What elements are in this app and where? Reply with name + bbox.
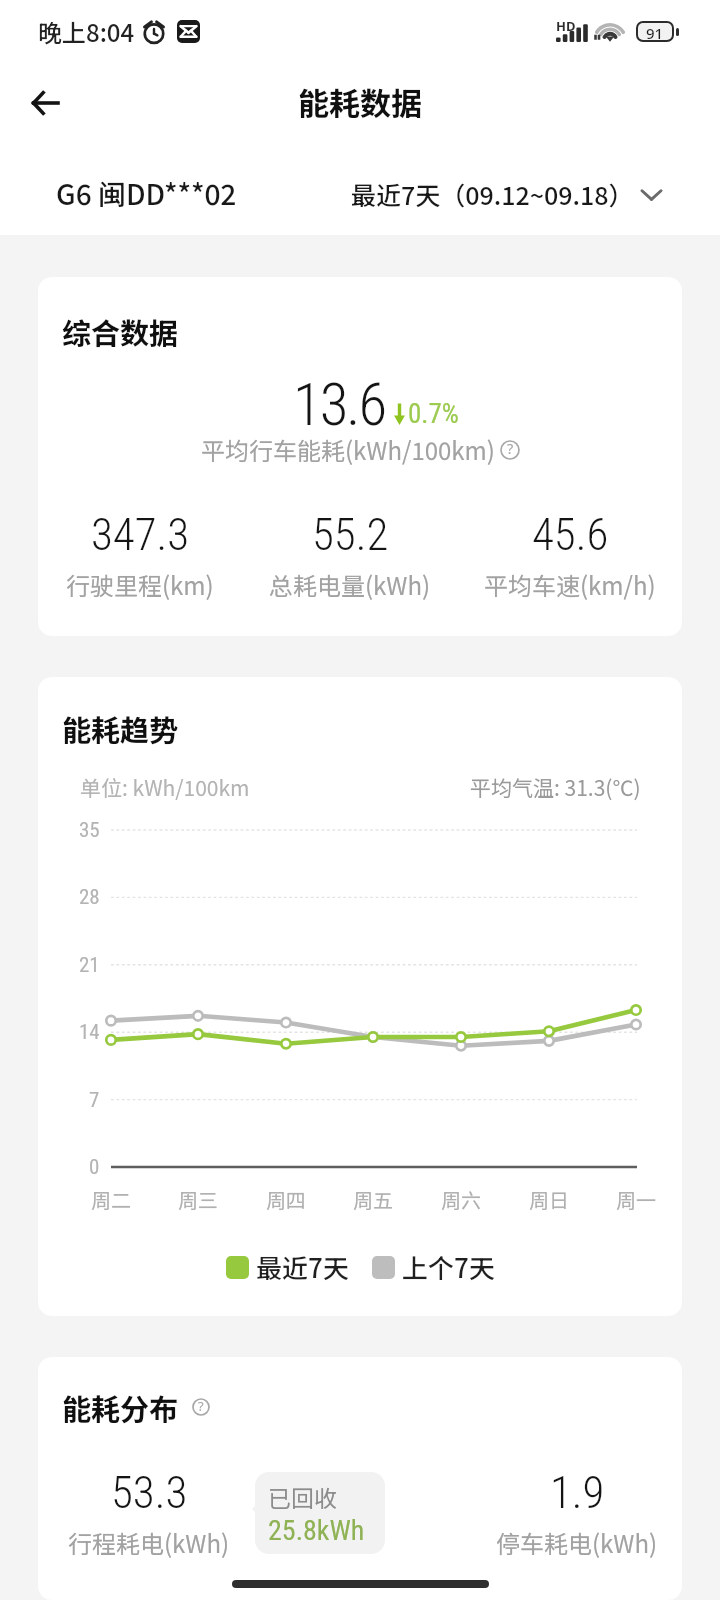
staticText: 周四 (266, 1185, 306, 1214)
staticText: 53.3 (111, 1466, 188, 1519)
button[interactable]: 最近7天（09.12~09.18） (351, 176, 663, 212)
staticText: 行驶里程(km) (66, 567, 214, 602)
staticText: 单位: kWh/100km (80, 772, 250, 802)
button[interactable]: Help (192, 1398, 210, 1416)
staticText: 能耗分布 (62, 1386, 179, 1428)
staticText: 0.7% (408, 398, 459, 430)
staticText: 28 (79, 885, 100, 910)
staticText: 周二 (91, 1185, 131, 1214)
staticText: 21 (79, 953, 100, 978)
staticText: 最近7天 (256, 1248, 349, 1286)
staticText: 周六 (441, 1185, 481, 1214)
staticText: 总耗电量(kWh) (269, 567, 431, 602)
button[interactable]: 综合数据 (38, 277, 682, 636)
staticText: ? (507, 439, 514, 459)
staticText: 7 (89, 1088, 100, 1113)
staticText: 行程耗电(kWh) (68, 1525, 230, 1560)
staticText: 45.6 (532, 508, 609, 561)
button[interactable]: 能耗趋势 (38, 677, 682, 1316)
staticText: 1.9 (550, 1466, 605, 1519)
staticText: 91 (646, 23, 664, 40)
button[interactable]: 能耗分布 (38, 1357, 682, 1600)
staticText: 周日 (529, 1185, 569, 1214)
staticText: 平均气温: 31.3(℃) (470, 772, 641, 802)
staticText: 周一 (616, 1185, 656, 1214)
staticText: 最近7天（09.12~09.18） (351, 176, 634, 212)
staticText: 能耗趋势 (62, 707, 179, 749)
staticText: 13.6 (293, 370, 386, 439)
staticText: 综合数据 (62, 310, 179, 352)
staticText: 周三 (178, 1185, 218, 1214)
staticText: 周五 (353, 1185, 393, 1214)
staticText: 14 (79, 1020, 100, 1045)
button[interactable]: Help (500, 440, 520, 460)
staticText: 上个7天 (402, 1248, 495, 1286)
button[interactable]: G6 闽DD***02 (56, 173, 237, 214)
staticText: 平均行车能耗(kWh/100km) (201, 432, 495, 467)
staticText: 能耗数据 (298, 79, 422, 124)
staticText: 停车耗电(kWh) (496, 1525, 658, 1560)
button[interactable]: 上个7天 (372, 1248, 495, 1286)
staticText: 晚上8:04 (38, 14, 135, 49)
button[interactable]: 最近7天 (226, 1248, 349, 1286)
staticText: 0 (89, 1155, 100, 1180)
staticText: 已回收 (268, 1480, 337, 1513)
staticText: 55.2 (312, 508, 389, 561)
button[interactable]: Back (13, 72, 71, 130)
staticText: 25.8kWh (268, 1514, 365, 1547)
staticText: 35 (79, 818, 100, 843)
staticText: 347.3 (91, 508, 190, 561)
staticText: 平均车速(km/h) (484, 567, 656, 602)
staticText: ? (198, 1397, 204, 1415)
staticText: HD (556, 17, 576, 35)
